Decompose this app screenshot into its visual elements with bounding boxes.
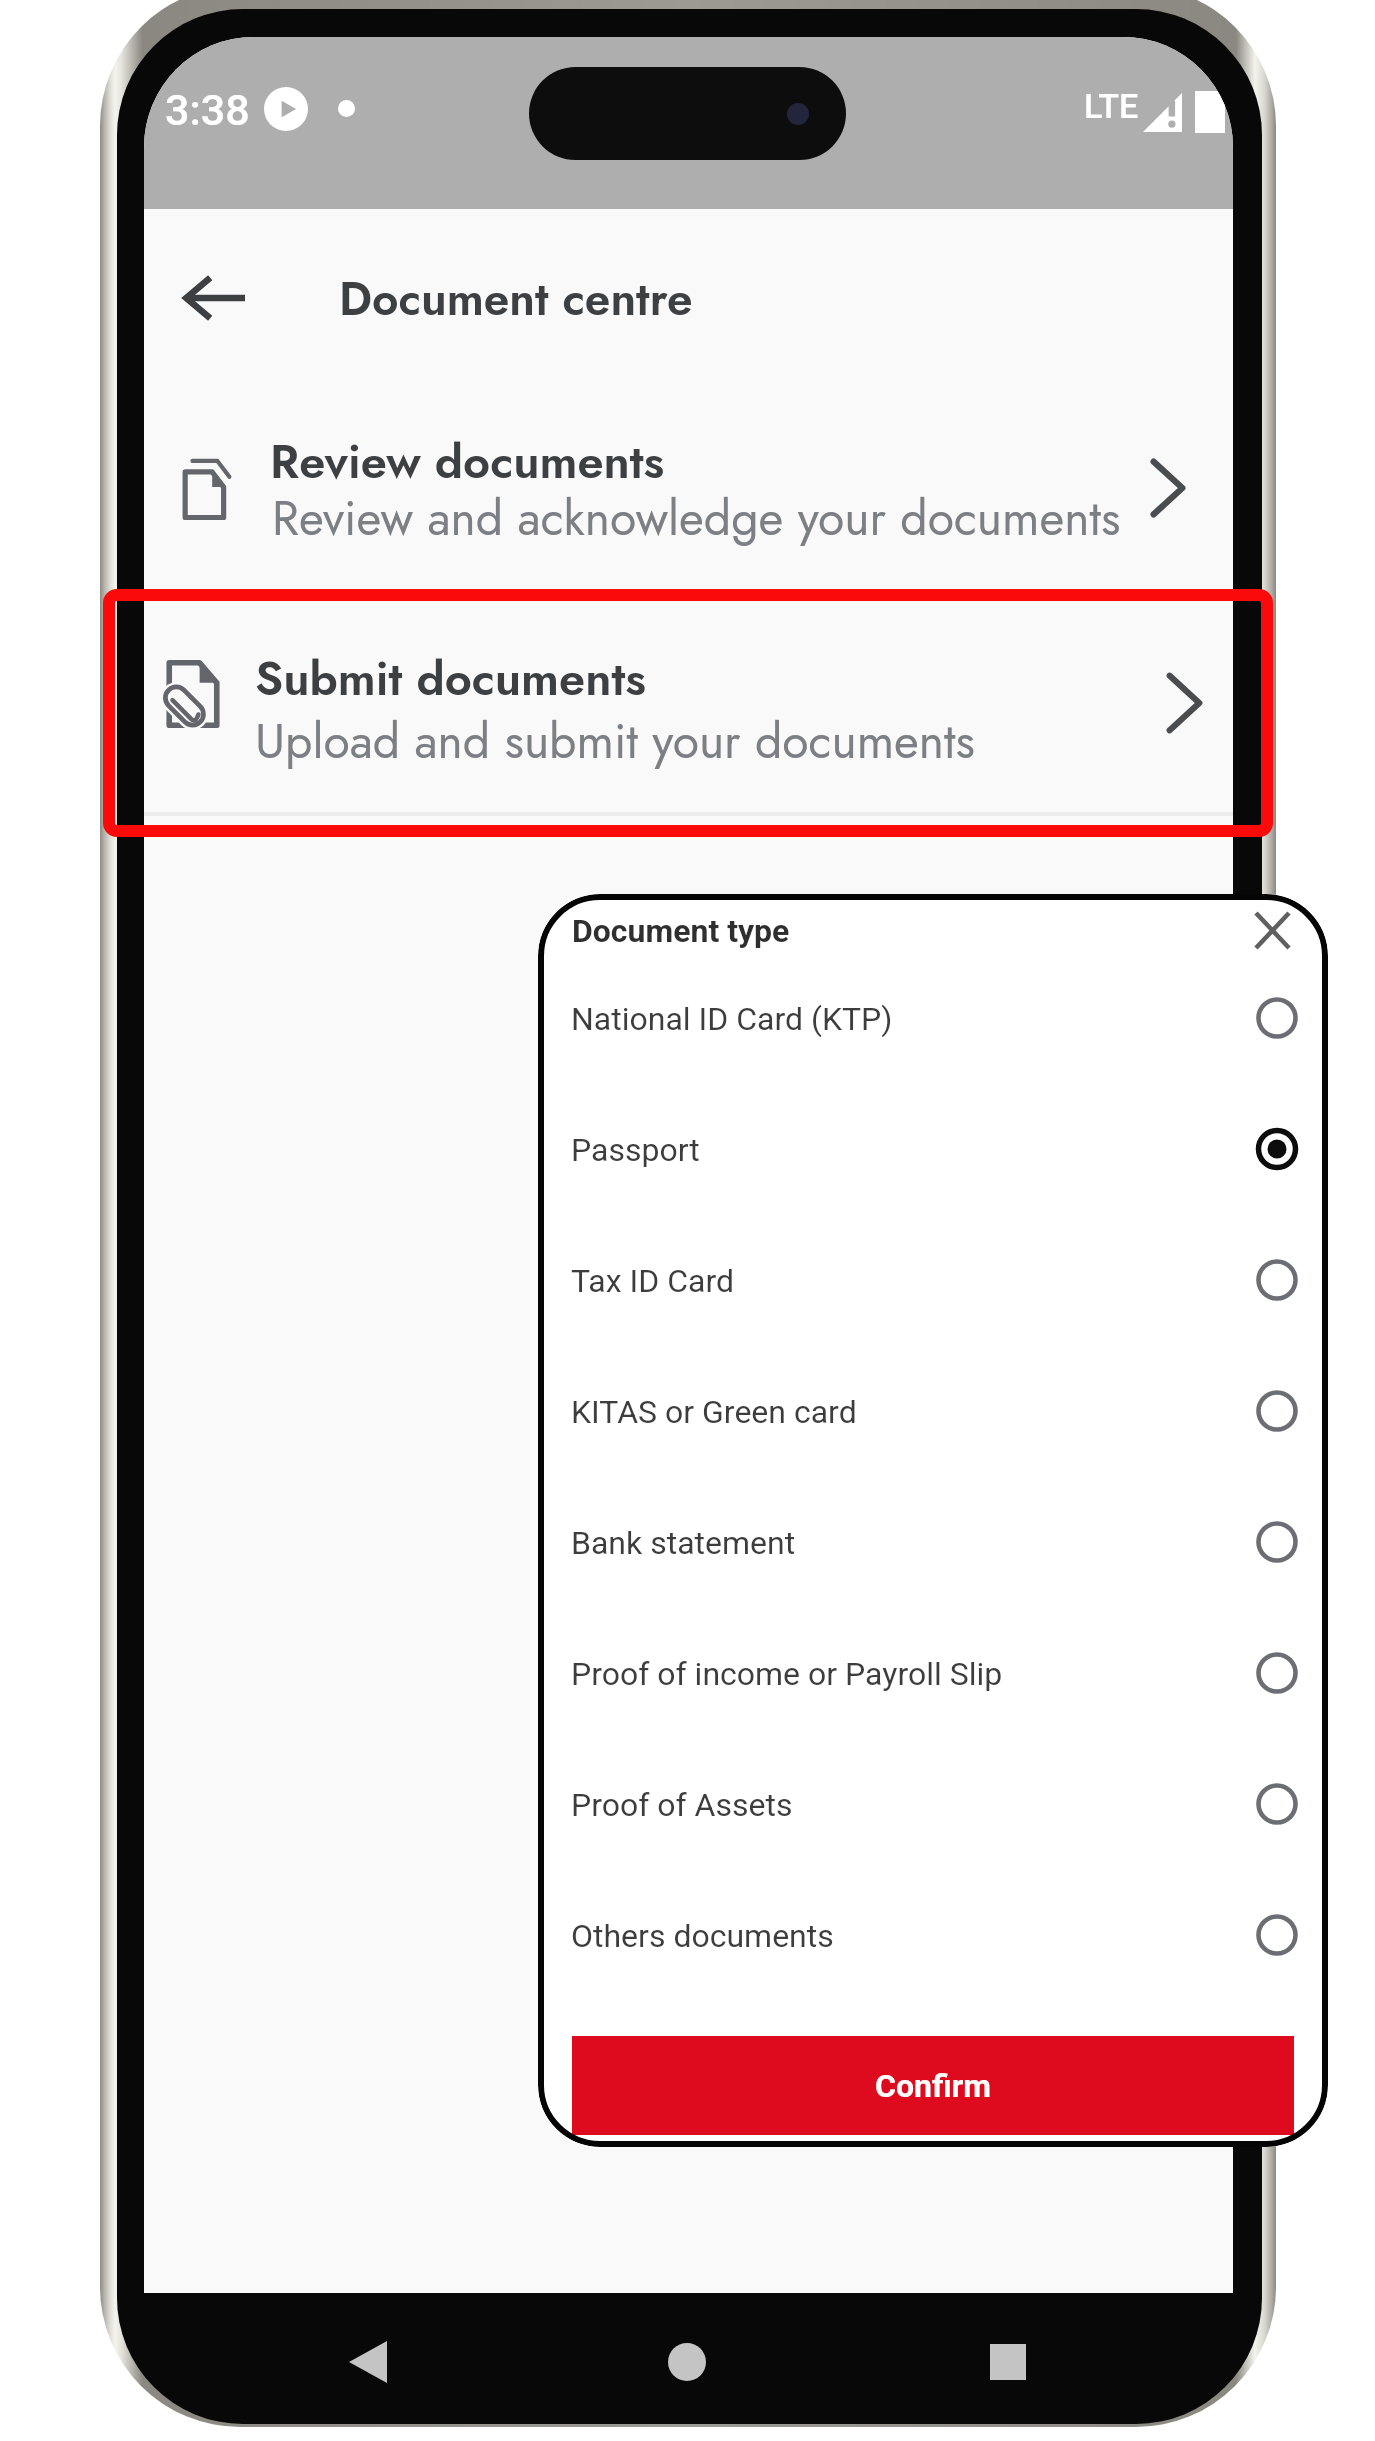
button[interactable]: Back bbox=[332, 2326, 404, 2398]
staticText: Passport bbox=[571, 1131, 700, 1169]
button[interactable] bbox=[538, 1089, 1328, 1209]
staticText: Document type bbox=[572, 912, 790, 950]
staticText: Proof of income or Payroll Slip bbox=[571, 1655, 1003, 1693]
staticText: Confirm bbox=[875, 2067, 991, 2105]
button[interactable] bbox=[538, 958, 1328, 1078]
button[interactable] bbox=[538, 1875, 1328, 1995]
staticText: Upload and submit your documents bbox=[255, 707, 975, 776]
button[interactable] bbox=[144, 623, 1233, 813]
button[interactable]: Close bbox=[1240, 898, 1304, 962]
staticText: Others documents bbox=[571, 1917, 834, 1955]
button[interactable]: Home bbox=[651, 2326, 723, 2398]
staticText: Review documents bbox=[270, 428, 665, 496]
staticText: Proof of Assets bbox=[571, 1786, 793, 1824]
staticText: KITAS or Green card bbox=[571, 1393, 857, 1431]
button[interactable] bbox=[538, 1351, 1328, 1471]
staticText: Review and acknowledge your documents bbox=[272, 484, 1121, 553]
staticText: LTE bbox=[1084, 86, 1139, 126]
button[interactable] bbox=[538, 1744, 1328, 1864]
button[interactable] bbox=[538, 1613, 1328, 1733]
button[interactable]: Back bbox=[165, 248, 265, 348]
staticText: National ID Card (KTP) bbox=[571, 1000, 893, 1038]
staticText: Tax ID Card bbox=[571, 1262, 735, 1300]
staticText: Bank statement bbox=[571, 1524, 796, 1562]
staticText: Document centre bbox=[339, 266, 693, 332]
staticText: 3:38 bbox=[165, 85, 250, 135]
button[interactable] bbox=[538, 1482, 1328, 1602]
button[interactable]: Recents bbox=[972, 2326, 1044, 2398]
staticText: Submit documents bbox=[255, 645, 646, 713]
button[interactable] bbox=[538, 1220, 1328, 1340]
button[interactable]: Confirm bbox=[572, 2036, 1294, 2135]
button[interactable] bbox=[144, 407, 1233, 593]
